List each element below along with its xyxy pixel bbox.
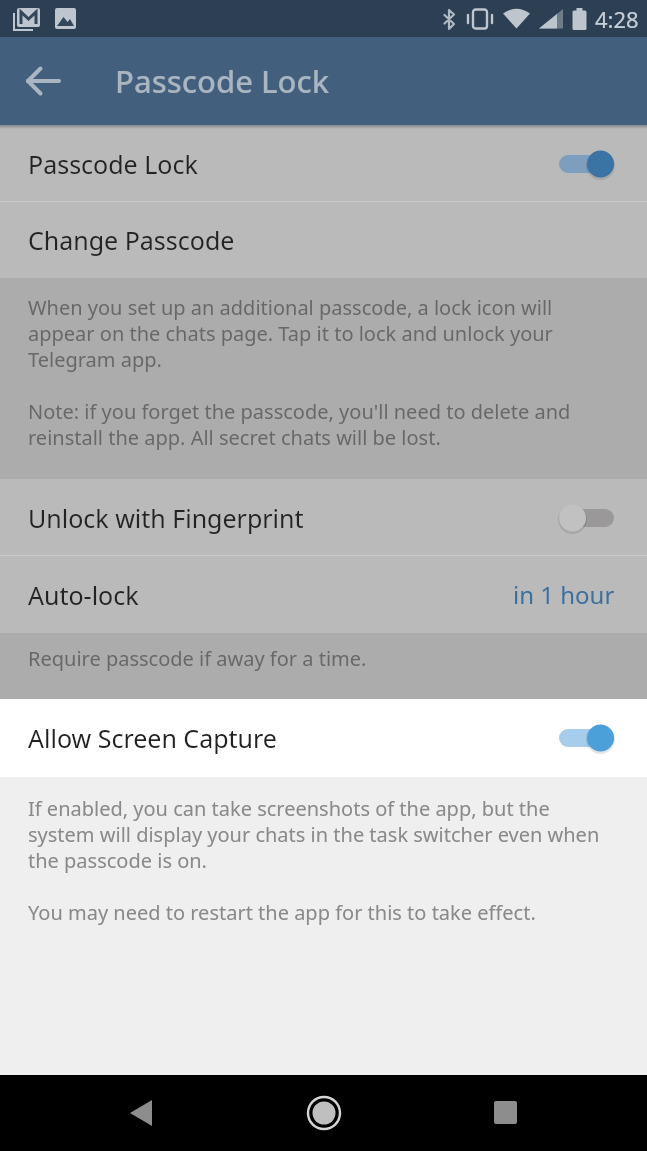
button[interactable]: Auto-lock (0, 556, 647, 633)
staticText: Allow Screen Capture (28, 721, 277, 755)
button[interactable] (559, 723, 615, 753)
staticText: When you set up an additional passcode, … (28, 294, 571, 451)
staticText: in 1 hour (513, 578, 615, 611)
staticText: Change Passcode (28, 223, 235, 257)
staticText: If enabled, you can take screenshots of … (28, 795, 600, 926)
button[interactable] (26, 63, 62, 99)
staticText: Require passcode if away for a time. (28, 645, 367, 672)
button[interactable]: Change Passcode (0, 202, 647, 278)
staticText: 4:28 (595, 4, 639, 34)
button[interactable]: Unlock with Fingerprint (0, 479, 647, 556)
staticText: Passcode Lock (28, 147, 198, 181)
button[interactable] (104, 1075, 180, 1151)
staticText: Auto-lock (28, 578, 139, 612)
button[interactable] (468, 1075, 544, 1151)
button[interactable] (559, 503, 615, 533)
button[interactable] (286, 1075, 362, 1151)
staticText: Passcode Lock (115, 60, 330, 102)
button[interactable] (559, 149, 615, 179)
staticText: Unlock with Fingerprint (28, 501, 304, 535)
button[interactable]: Allow Screen Capture (0, 699, 647, 777)
button[interactable]: Passcode Lock (0, 125, 647, 202)
